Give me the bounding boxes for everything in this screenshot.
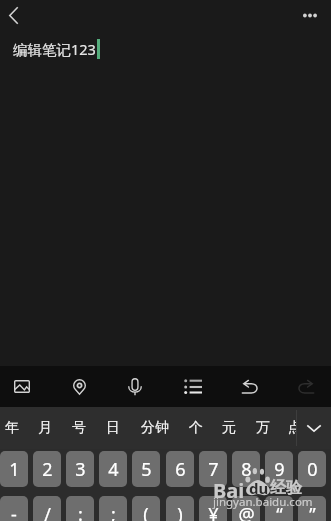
staticText: 7 [208, 457, 219, 482]
button[interactable]: 7 [199, 451, 227, 487]
staticText: 8 [241, 457, 252, 482]
staticText: - [11, 502, 17, 521]
button[interactable]: 5 [132, 451, 160, 487]
staticText: 点 [288, 419, 302, 437]
button[interactable]: : [66, 496, 94, 521]
staticText: 6 [175, 457, 186, 482]
staticText: 月 [38, 419, 52, 437]
staticText: 分钟 [141, 419, 169, 437]
button[interactable]: 6 [166, 451, 194, 487]
button[interactable]: “ [265, 496, 293, 521]
button[interactable]: Voice input [113, 366, 157, 407]
button[interactable]: 万 [246, 407, 279, 449]
staticText: 日 [106, 419, 120, 437]
staticText: 编辑笔记123 [13, 39, 96, 59]
button[interactable]: 个 [179, 407, 212, 449]
button[interactable]: Redo [284, 366, 328, 407]
button[interactable]: 0 [298, 451, 326, 487]
staticText: 9 [274, 457, 285, 482]
button[interactable]: 4 [99, 451, 127, 487]
button[interactable]: 点 [278, 407, 311, 449]
button[interactable]: Back [0, 0, 32, 32]
button[interactable]: More options [292, 0, 331, 32]
button[interactable]: 元 [212, 407, 245, 449]
button[interactable]: Location [57, 366, 101, 407]
staticText: ( [143, 502, 149, 521]
button[interactable]: 3 [66, 451, 94, 487]
button[interactable]: Insert image [0, 366, 44, 407]
staticText: 0 [307, 457, 318, 482]
button[interactable]: 月 [28, 407, 61, 449]
staticText: : [78, 502, 83, 521]
staticText: / [44, 502, 51, 521]
button[interactable]: 8 [232, 451, 260, 487]
button[interactable]: Checklist [171, 366, 215, 407]
staticText: 万 [256, 419, 270, 437]
button[interactable]: 号 [62, 407, 95, 449]
staticText: jingyan.baidu.com [213, 494, 313, 510]
staticText: ; [111, 502, 116, 521]
button[interactable]: 1 [0, 451, 28, 487]
button[interactable]: ) [166, 496, 194, 521]
button[interactable]: / [33, 496, 61, 521]
staticText: 3 [75, 457, 86, 482]
staticText: @ [238, 502, 255, 521]
staticText: “ [276, 502, 283, 521]
staticText: Bai [213, 477, 245, 504]
staticText: 经验 [270, 478, 302, 498]
button[interactable]: 年 [0, 407, 28, 449]
staticText: ” [309, 502, 316, 521]
button[interactable]: ¥ [199, 496, 227, 521]
staticText: 个 [189, 419, 203, 437]
button[interactable]: ; [99, 496, 127, 521]
staticText: 1 [9, 457, 20, 482]
staticText: 4 [108, 457, 119, 482]
staticText: 2 [42, 457, 53, 482]
staticText: du [249, 478, 269, 498]
button[interactable]: ” [298, 496, 326, 521]
staticText: ¥ [208, 502, 219, 521]
staticText: ) [177, 502, 183, 521]
button[interactable]: Undo [228, 366, 272, 407]
button[interactable]: 分钟 [131, 407, 178, 449]
button[interactable]: - [0, 496, 28, 521]
button[interactable]: 2 [33, 451, 61, 487]
button[interactable]: @ [232, 496, 260, 521]
staticText: 5 [141, 457, 152, 482]
button[interactable]: 9 [265, 451, 293, 487]
staticText: 号 [72, 419, 86, 437]
button[interactable]: Hide keyboard [297, 407, 331, 449]
button[interactable]: 日 [96, 407, 129, 449]
staticText: 年 [5, 419, 19, 437]
staticText: 元 [222, 419, 236, 437]
button[interactable]: ( [132, 496, 160, 521]
